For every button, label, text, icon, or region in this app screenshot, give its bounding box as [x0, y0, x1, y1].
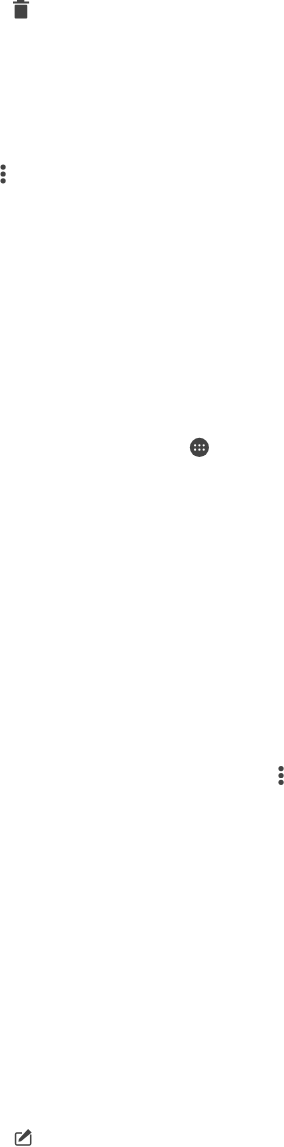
button[interactable]: Apps: [187, 435, 211, 459]
button[interactable]: More options: [0, 162, 15, 186]
button[interactable]: More options: [269, 763, 284, 787]
button[interactable]: Edit: [12, 1129, 36, 1147]
button[interactable]: Delete: [9, 0, 33, 22]
